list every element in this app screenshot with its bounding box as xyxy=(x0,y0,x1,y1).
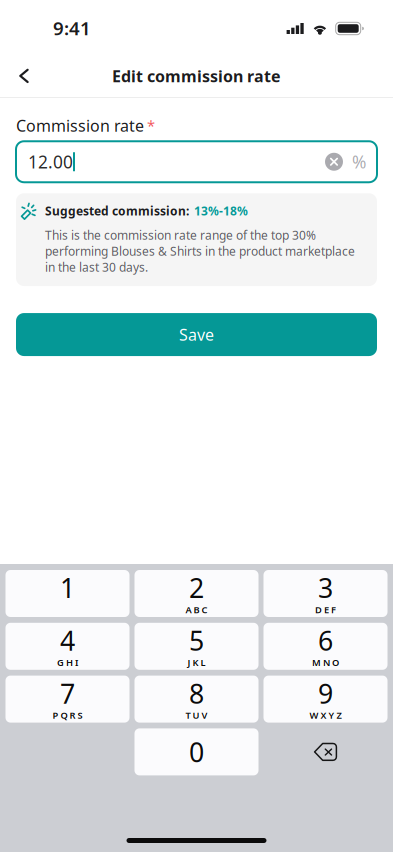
staticText: 8 xyxy=(189,676,204,711)
button[interactable]: 4 xyxy=(5,623,129,670)
staticText: Edit commission rate xyxy=(112,65,281,87)
staticText: 12.00 xyxy=(28,150,73,173)
staticText: A B C xyxy=(185,603,207,616)
button[interactable]: 6 xyxy=(263,623,387,670)
button[interactable]: Save xyxy=(16,313,377,356)
staticText: P Q R S xyxy=(52,709,82,721)
staticText: Suggested commission: xyxy=(45,203,189,219)
button[interactable]: Back xyxy=(0,55,48,97)
staticText: 9:41 xyxy=(53,16,91,40)
staticText: 6 xyxy=(318,623,333,658)
staticText: 4 xyxy=(60,623,75,658)
staticText: 9 xyxy=(318,676,333,711)
button[interactable]: Delete xyxy=(263,728,387,775)
button[interactable]: 5 xyxy=(134,623,258,670)
staticText: 2 xyxy=(189,570,204,605)
button[interactable]: 2 xyxy=(134,570,258,617)
button[interactable]: 8 xyxy=(134,676,258,723)
button[interactable]: 7 xyxy=(5,676,129,723)
button[interactable]: 0 xyxy=(134,728,258,775)
staticText: 3 xyxy=(318,570,333,605)
button[interactable]: 9 xyxy=(263,676,387,723)
staticText: 7 xyxy=(60,676,75,711)
button[interactable]: 3 xyxy=(263,570,387,617)
staticText: W X Y Z xyxy=(309,709,341,721)
staticText: 13%-18% xyxy=(194,203,248,219)
staticText: * xyxy=(147,116,155,135)
staticText: Commission rate xyxy=(16,115,144,136)
staticText: Save xyxy=(179,324,214,345)
staticText: 5 xyxy=(189,623,204,658)
staticText: G H I xyxy=(57,656,78,669)
staticText: J K L xyxy=(187,656,205,669)
staticText: 0 xyxy=(189,734,204,770)
staticText: 1 xyxy=(60,570,75,605)
staticText: D E F xyxy=(315,603,336,616)
staticText: % xyxy=(352,150,366,173)
staticText: T U V xyxy=(185,709,207,721)
staticText: M N O xyxy=(312,656,339,669)
staticText: This is the commission rate range of the… xyxy=(45,227,355,275)
button[interactable]: 1 xyxy=(5,570,129,617)
